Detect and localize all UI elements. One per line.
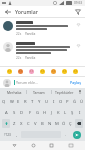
staticText: D xyxy=(20,110,24,116)
button[interactable]: Ö xyxy=(60,118,67,129)
button[interactable]: laugh xyxy=(72,68,79,75)
button[interactable]: I xyxy=(76,107,83,118)
button[interactable]: Back xyxy=(10,141,19,150)
button[interactable]: Comma xyxy=(13,129,20,140)
button[interactable]: H xyxy=(41,107,48,118)
button[interactable]: Shift xyxy=(2,119,10,128)
staticText: X xyxy=(20,121,23,127)
staticText: I xyxy=(79,110,81,116)
button[interactable]: S xyxy=(10,107,18,118)
button[interactable]: Recents xyxy=(47,141,56,150)
button[interactable]: Ü xyxy=(78,96,85,107)
button[interactable]: surprise xyxy=(50,68,57,75)
staticText: Yanıtla xyxy=(25,32,36,36)
button[interactable]: G xyxy=(34,107,41,118)
staticText: Ş xyxy=(71,110,74,116)
button[interactable]: Yorum ekle... xyxy=(14,80,69,85)
staticText: I xyxy=(53,99,55,105)
button[interactable]: Like xyxy=(75,21,82,28)
staticText: T xyxy=(31,99,34,105)
button[interactable]: clap xyxy=(28,68,35,75)
button[interactable]: F xyxy=(26,107,34,118)
button[interactable]: P xyxy=(64,96,71,107)
staticText: Ö xyxy=(62,121,66,127)
staticText: Teşekkürler xyxy=(55,90,74,95)
button[interactable]: R xyxy=(22,96,29,107)
staticText: . xyxy=(65,132,67,137)
button[interactable]: Merhaba xyxy=(2,88,26,96)
button[interactable]: Voice input xyxy=(76,88,83,96)
button[interactable]: Y xyxy=(36,96,43,107)
staticText: J xyxy=(51,110,53,116)
staticText: R xyxy=(24,99,27,105)
button[interactable]: fire xyxy=(17,68,24,75)
button[interactable]: Tamam xyxy=(27,88,51,96)
button[interactable]: smile xyxy=(39,68,46,75)
staticText: V xyxy=(34,121,37,127)
staticText: Yorumlar xyxy=(15,8,38,15)
button[interactable]: Ç xyxy=(67,118,74,129)
button[interactable]: Backspace xyxy=(75,119,83,128)
button[interactable]: O xyxy=(57,96,64,107)
button[interactable]: Q xyxy=(0,96,8,107)
staticText: Tamam xyxy=(33,90,45,95)
staticText: Z xyxy=(13,121,16,127)
button[interactable]: N xyxy=(46,118,53,129)
button[interactable]: Ğ xyxy=(71,96,78,107)
button[interactable]: U xyxy=(43,96,50,107)
button[interactable]: T xyxy=(29,96,36,107)
staticText: F xyxy=(29,110,32,116)
button[interactable]: J xyxy=(48,107,55,118)
button[interactable]: heart-eyes xyxy=(6,68,13,75)
staticText: Y xyxy=(38,99,41,105)
button[interactable]: E xyxy=(15,96,22,107)
button[interactable]: I xyxy=(50,96,57,107)
button[interactable]: Back xyxy=(3,7,12,16)
button[interactable]: M xyxy=(53,118,60,129)
button[interactable]: V xyxy=(32,118,39,129)
staticText: Yorum ekle... xyxy=(16,80,38,85)
staticText: U xyxy=(45,99,49,105)
button[interactable]: 22s xyxy=(0,39,85,63)
button[interactable]: Paylaş xyxy=(69,78,82,87)
staticText: Yanıtla xyxy=(25,56,36,60)
staticText: W xyxy=(10,99,14,105)
button[interactable]: K xyxy=(55,107,62,118)
button[interactable]: B xyxy=(39,118,46,129)
button[interactable]: Filter xyxy=(73,7,82,16)
staticText: 22s xyxy=(16,56,22,60)
staticText: Q xyxy=(2,99,6,105)
button[interactable]: L xyxy=(62,107,69,118)
staticText: B xyxy=(41,121,44,127)
staticText: Paylaş xyxy=(70,80,81,85)
button[interactable]: Z xyxy=(11,118,18,129)
button[interactable]: X xyxy=(18,118,25,129)
button[interactable]: D xyxy=(18,107,26,118)
button[interactable]: 22s xyxy=(0,18,85,39)
staticText: 22s xyxy=(16,32,22,36)
button[interactable]: cry xyxy=(61,68,68,75)
button[interactable]: ?123 xyxy=(1,129,13,140)
staticText: Ğ xyxy=(73,99,77,105)
staticText: E xyxy=(17,99,20,105)
button[interactable]: Like xyxy=(75,42,82,49)
button[interactable]: Home xyxy=(29,141,38,150)
staticText: Merhaba xyxy=(7,90,22,95)
staticText: K xyxy=(57,110,60,116)
button[interactable]: W xyxy=(8,96,15,107)
button[interactable]: Send xyxy=(69,129,84,140)
staticText: H xyxy=(43,110,47,116)
staticText: A xyxy=(5,110,8,116)
button[interactable]: C xyxy=(25,118,32,129)
staticText: S xyxy=(13,110,16,116)
staticText: Ü xyxy=(80,99,84,105)
staticText: N xyxy=(48,121,52,127)
staticText: M xyxy=(55,121,59,127)
button[interactable]: A xyxy=(2,107,10,118)
button[interactable]: Teşekkürler xyxy=(52,88,76,96)
staticText: , xyxy=(16,132,18,137)
button[interactable]: Hide keyboard xyxy=(66,141,75,150)
button[interactable]: Ş xyxy=(69,107,76,118)
